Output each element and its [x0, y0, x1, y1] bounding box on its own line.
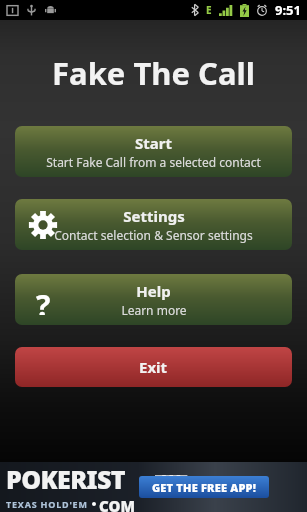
staticText: TEXAS HOLD'EM [6, 498, 88, 510]
button[interactable]: Settings [15, 199, 292, 250]
staticText: Help [136, 281, 171, 301]
staticText: E [206, 3, 212, 17]
staticText: Learn more [121, 302, 187, 318]
staticText: Start [135, 133, 172, 153]
staticText: COM [99, 496, 135, 512]
staticText: GET THE FREE APP! [152, 480, 257, 495]
staticText: Fake The Call [0, 52, 307, 94]
staticText: 9:51 [275, 1, 301, 19]
button[interactable]: GET THE FREE APP! [139, 476, 269, 498]
button[interactable]: Exit [15, 347, 292, 387]
staticText: Settings [123, 206, 185, 226]
button[interactable]: Pokerist advertisement [0, 462, 307, 512]
staticText: Contact selection & Sensor settings [54, 227, 253, 243]
staticText: ? [36, 285, 51, 315]
staticText: Exit [139, 357, 168, 377]
button[interactable]: Start [15, 126, 292, 177]
button[interactable]: ? [15, 274, 292, 325]
staticText: Start Fake Call from a selected contact [46, 154, 261, 170]
staticText: POKERIST [6, 462, 125, 496]
